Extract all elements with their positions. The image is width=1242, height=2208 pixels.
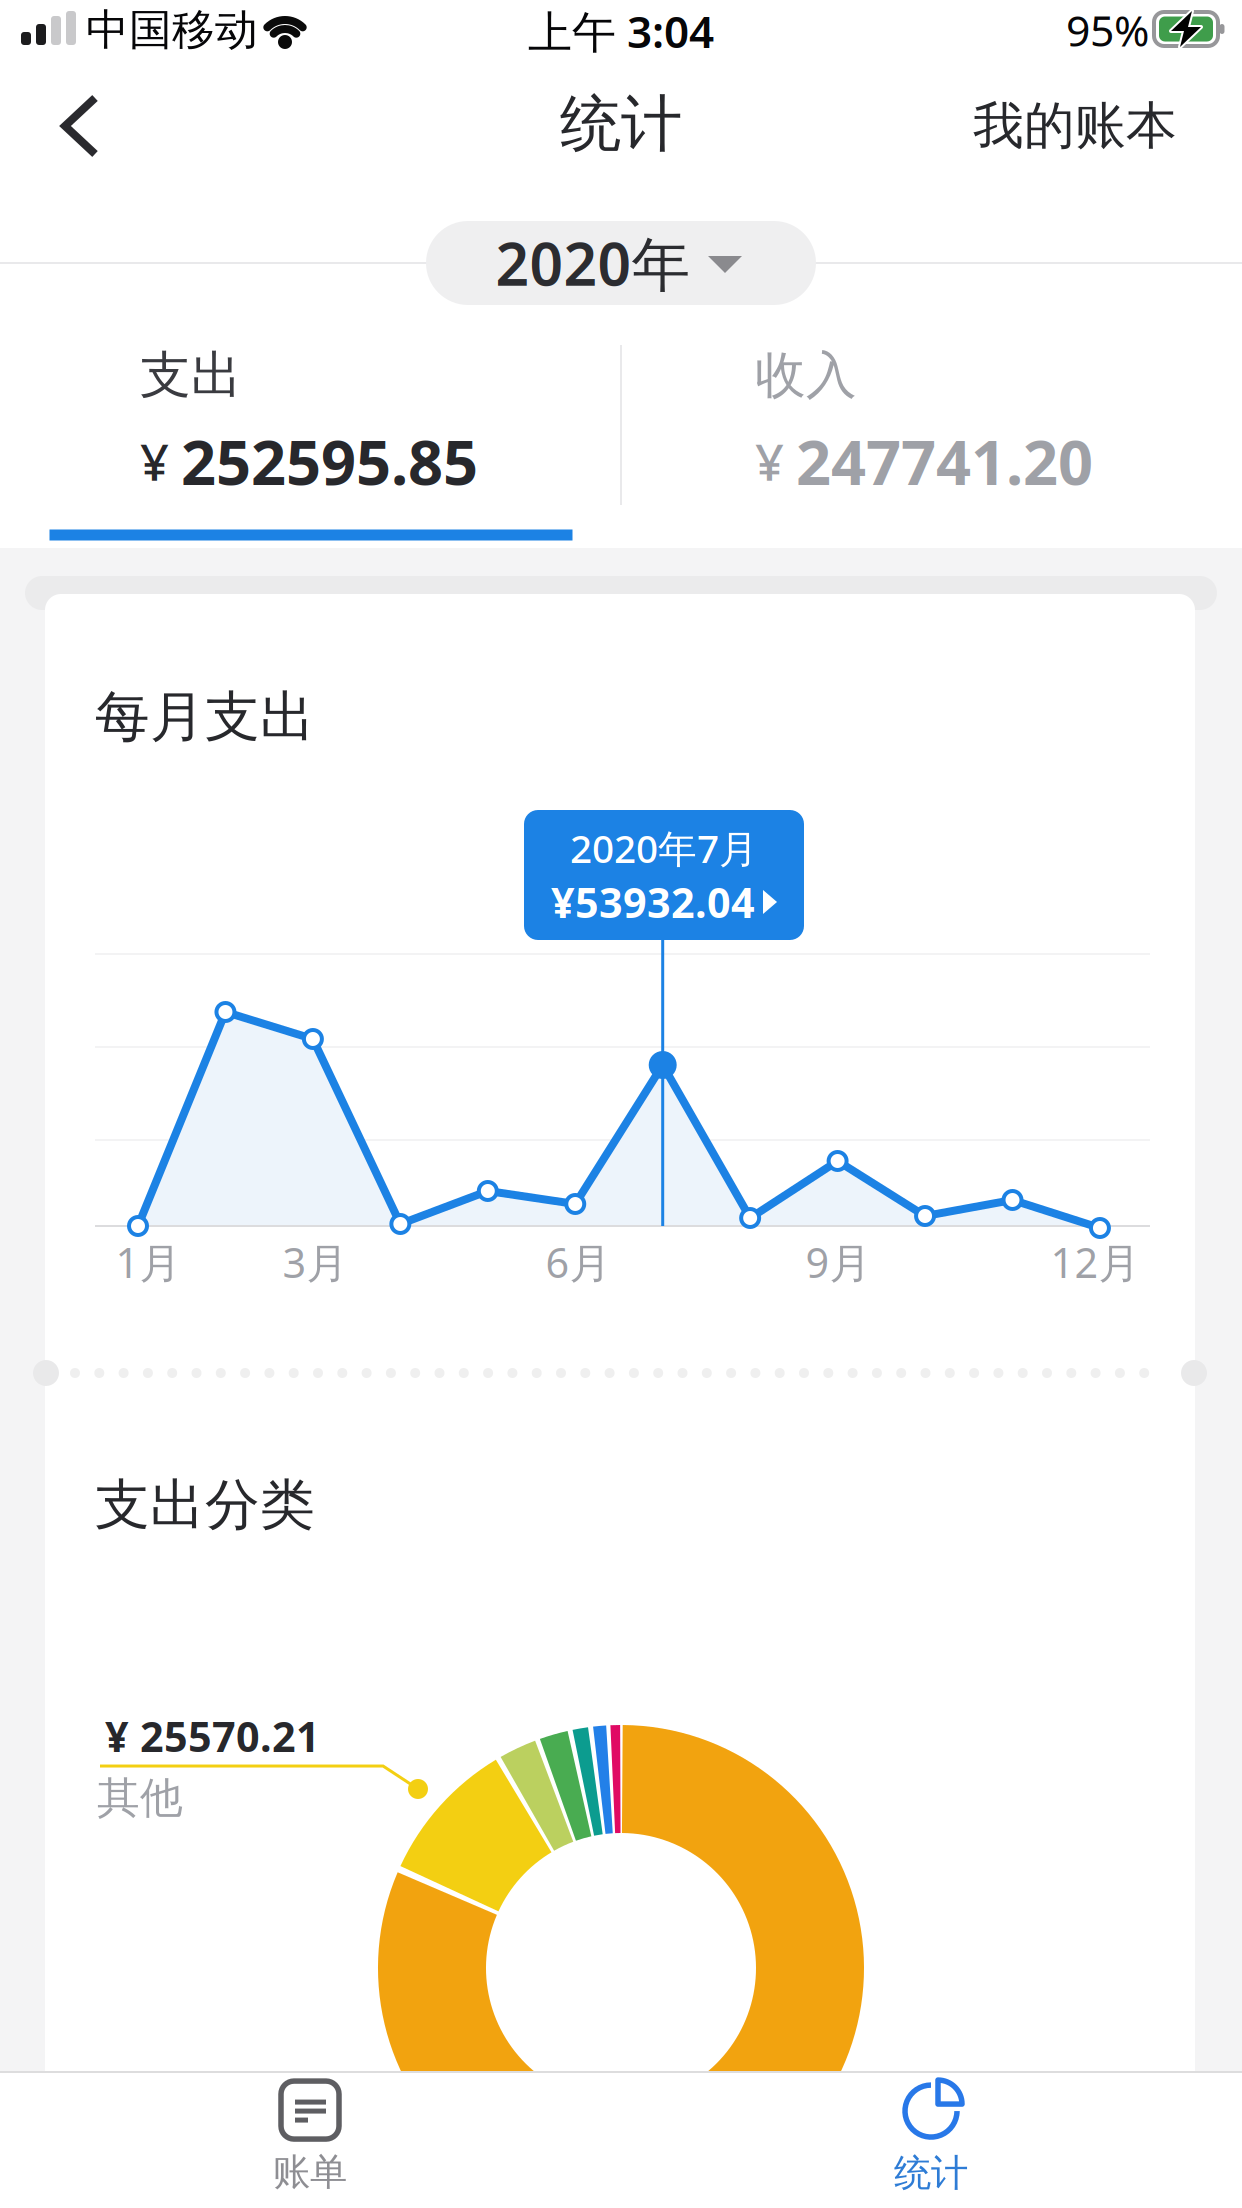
staticText: 其他	[97, 1772, 183, 1824]
button[interactable]: 2020年	[426, 221, 816, 305]
staticText: 252595.85	[181, 420, 478, 502]
staticText: 我的账本	[973, 95, 1177, 157]
staticText: 支出分类	[95, 1471, 315, 1538]
button[interactable]: 支出	[0, 0, 1242, 2208]
button[interactable]: 返回	[0, 0, 1242, 2208]
button[interactable]: 收入	[0, 0, 1242, 2208]
staticText: 95%	[1066, 2, 1149, 58]
staticText: 中国移动	[86, 4, 258, 56]
staticText: ¥	[140, 427, 169, 495]
staticText: 3月	[282, 1235, 347, 1289]
staticText: 1月	[115, 1235, 180, 1289]
staticText: 支出	[140, 344, 242, 406]
staticText: ¥ 25570.21	[105, 1709, 320, 1763]
staticText: 上午 3:04	[528, 2, 714, 60]
staticText: ¥53932.04	[551, 875, 755, 929]
staticText: 每月支出	[95, 683, 315, 750]
staticText: 收入	[755, 344, 857, 406]
button[interactable]: 我的账本	[0, 0, 1242, 2208]
button[interactable]: 账单	[160, 2073, 460, 2203]
staticText: 2020年	[495, 224, 690, 302]
staticText: 12月	[1050, 1235, 1139, 1289]
button[interactable]: 统计	[781, 2073, 1081, 2203]
staticText: 统计	[894, 2150, 968, 2196]
staticText: 6月	[545, 1235, 610, 1289]
staticText: 统计	[560, 86, 682, 162]
staticText: 账单	[273, 2149, 347, 2195]
staticText: ¥	[755, 427, 784, 495]
button[interactable]: 2020年7月	[524, 810, 804, 940]
staticText: 247741.20	[796, 420, 1093, 502]
staticText: 9月	[805, 1235, 870, 1289]
staticText: 2020年7月	[570, 822, 758, 874]
